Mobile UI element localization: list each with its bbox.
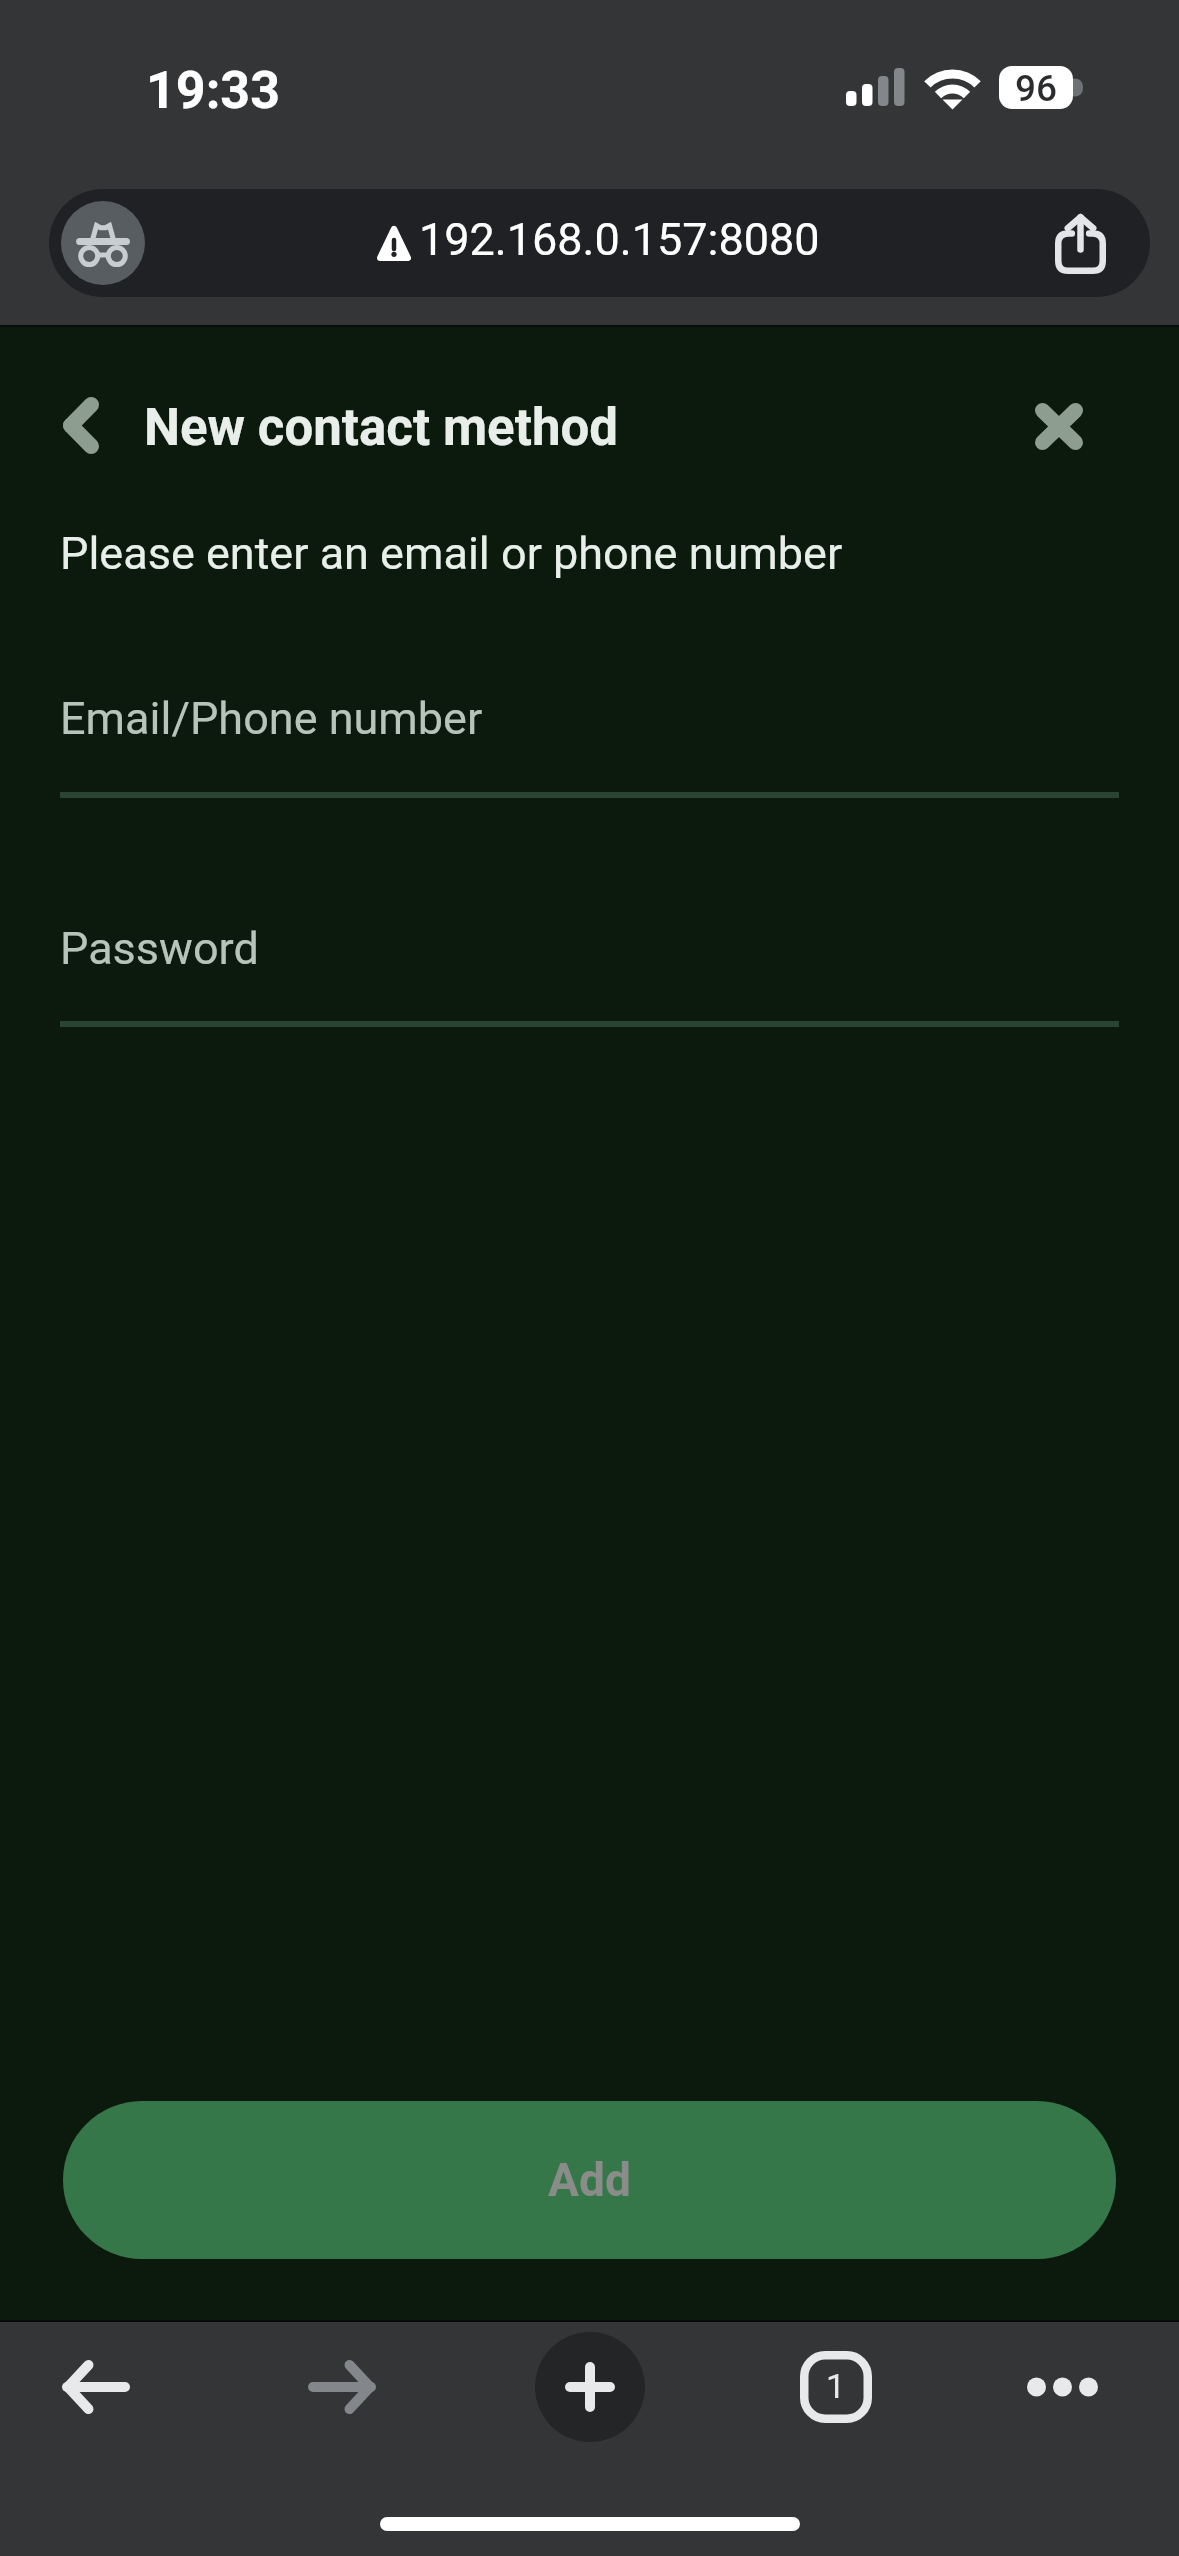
staticText: 1 (826, 2366, 846, 2406)
button[interactable]: Back (33, 377, 129, 473)
button[interactable]: Back (45, 2339, 141, 2435)
button[interactable]: Share (1030, 198, 1130, 288)
staticText: Password (60, 922, 259, 975)
staticText: Email/Phone number (60, 692, 483, 745)
other: Private browsing (61, 201, 145, 285)
button[interactable]: New tab (535, 2332, 645, 2442)
staticText: 192.168.0.157:8080 (419, 213, 820, 266)
button[interactable]: Close (1011, 378, 1107, 474)
button[interactable]: Tabs (788, 2339, 884, 2435)
button[interactable]: More (1014, 2339, 1110, 2435)
staticText: 19:33 (146, 60, 281, 121)
staticText: Please enter an email or phone number (60, 527, 843, 580)
button[interactable]: Add (63, 2101, 1116, 2259)
staticText: 96 (999, 67, 1073, 110)
button[interactable]: Private browsing (49, 189, 1150, 297)
staticText: New contact method (144, 398, 619, 458)
staticText: Add (548, 2153, 631, 2207)
button[interactable]: Forward (296, 2339, 392, 2435)
